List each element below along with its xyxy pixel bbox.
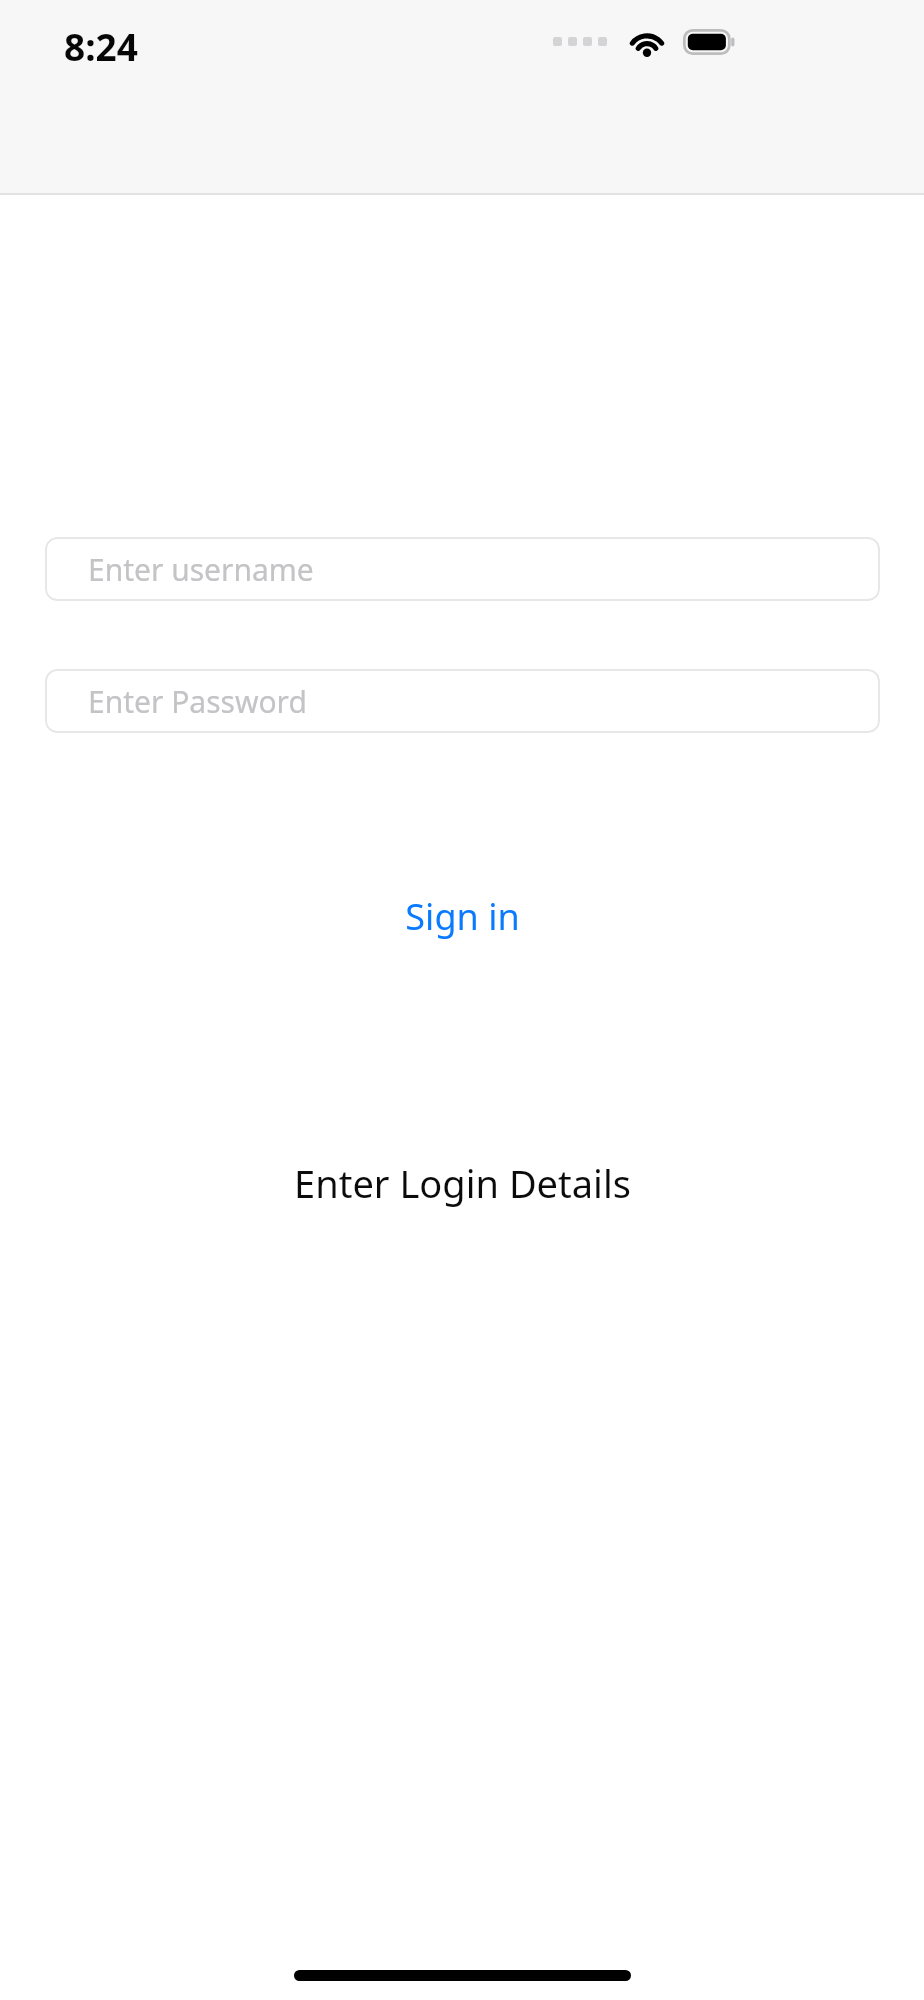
staticText: 8:24 (64, 21, 138, 71)
staticText: Enter Login Details (294, 1157, 631, 1209)
staticText: Sign in (405, 892, 520, 941)
button[interactable]: Enter Password (45, 669, 880, 733)
staticText: Enter username (88, 549, 314, 590)
button[interactable]: Enter username (45, 537, 880, 601)
button[interactable]: Sign in (387, 884, 538, 949)
other: Wi-Fi signal (627, 27, 667, 56)
staticText: Enter Password (88, 681, 307, 722)
other: Battery full (683, 29, 736, 55)
